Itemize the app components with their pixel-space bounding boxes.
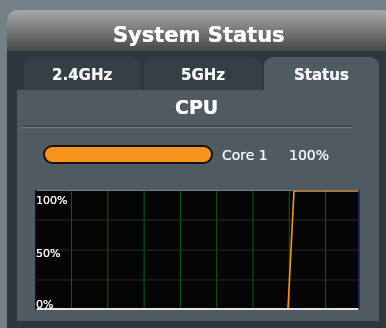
staticText: 2.4GHz xyxy=(52,66,113,83)
staticText: System Status xyxy=(113,23,285,47)
staticText: 100% xyxy=(289,147,330,163)
staticText: Status xyxy=(294,66,349,83)
button[interactable]: 5GHz xyxy=(144,57,262,91)
button[interactable]: 2.4GHz xyxy=(24,57,141,91)
staticText: 5GHz xyxy=(181,66,226,83)
staticText: CPU xyxy=(175,96,219,118)
staticText: Core 1 xyxy=(222,147,268,163)
staticText: 50% xyxy=(36,247,61,260)
staticText: 0% xyxy=(36,298,54,311)
button[interactable]: Status xyxy=(264,57,379,91)
staticText: 100% xyxy=(36,194,68,207)
